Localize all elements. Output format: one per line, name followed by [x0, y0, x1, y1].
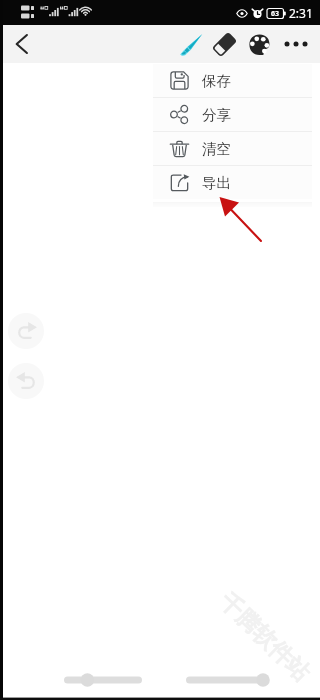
button[interactable]: Brush: [175, 25, 207, 63]
button[interactable]: More options: [280, 25, 312, 63]
button[interactable]: Slider: [64, 671, 142, 689]
button[interactable]: 导出: [153, 166, 312, 199]
button[interactable]: Palette: [243, 25, 275, 63]
staticText: 导出: [202, 174, 231, 192]
button[interactable]: 清空: [153, 132, 312, 165]
staticText: 清空: [202, 140, 231, 158]
staticText: 2:31: [289, 5, 313, 21]
button[interactable]: 保存: [153, 64, 312, 97]
button[interactable]: Back: [5, 27, 39, 61]
staticText: 分享: [202, 106, 231, 124]
staticText: 千腾软件站: [213, 587, 316, 688]
button[interactable]: Eraser: [208, 25, 240, 63]
staticText: 保存: [202, 72, 231, 90]
button[interactable]: 分享: [153, 98, 312, 131]
button[interactable]: Slider: [186, 671, 263, 689]
staticText: 63: [271, 9, 280, 19]
button[interactable]: Undo: [8, 363, 44, 399]
button[interactable]: Redo: [8, 313, 44, 349]
